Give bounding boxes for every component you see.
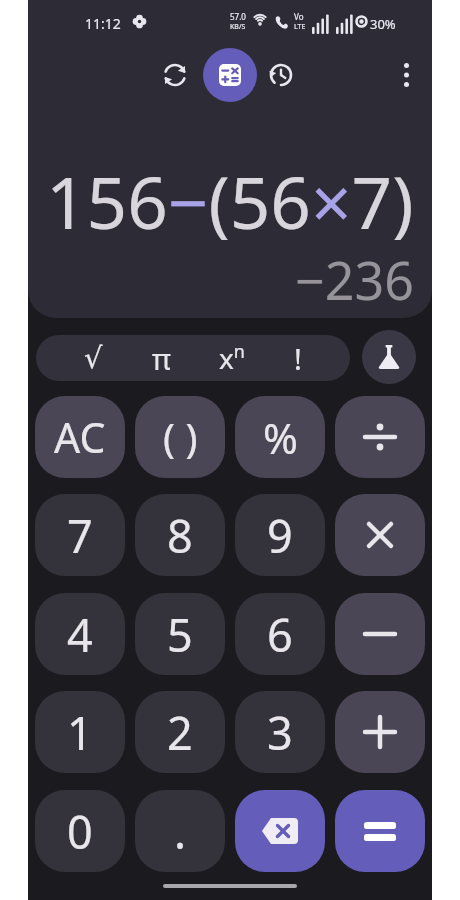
button[interactable]: ( )	[135, 396, 225, 478]
staticText: KB/S	[230, 22, 246, 32]
staticText: 7	[67, 505, 93, 566]
staticText: 0	[67, 801, 93, 862]
staticText: 9	[267, 505, 293, 566]
staticText: Vo	[294, 11, 304, 22]
button[interactable]: 6	[235, 593, 325, 675]
staticText: AC	[54, 409, 106, 465]
staticText: 2	[167, 702, 193, 763]
button[interactable]: AC	[35, 396, 125, 478]
button[interactable]	[335, 691, 425, 773]
button[interactable]	[203, 48, 257, 102]
button[interactable]	[335, 593, 425, 675]
staticText: 5	[167, 604, 193, 665]
staticText: 156−(56×7)	[46, 153, 414, 250]
staticText: −236	[295, 244, 414, 315]
staticText: 8	[167, 505, 193, 566]
button[interactable]: xn	[219, 339, 245, 377]
button[interactable]: π	[152, 339, 171, 378]
staticText: 6	[267, 604, 293, 665]
button[interactable]: 5	[135, 593, 225, 675]
button[interactable]: .	[135, 790, 225, 872]
staticText: LTE	[294, 22, 306, 32]
button[interactable]	[235, 790, 325, 872]
staticText: 1	[67, 702, 93, 763]
button[interactable]: 7	[35, 494, 125, 576]
button[interactable]	[362, 330, 416, 384]
button[interactable]: !	[294, 339, 302, 378]
button[interactable]: 3	[235, 691, 325, 773]
button[interactable]: 0	[35, 790, 125, 872]
staticText: 3	[267, 702, 293, 763]
button[interactable]	[265, 59, 297, 91]
button[interactable]: 1	[35, 691, 125, 773]
button[interactable]: 4	[35, 593, 125, 675]
staticText: 30%	[370, 15, 396, 33]
staticText: 57.0	[230, 11, 246, 22]
button[interactable]: 2	[135, 691, 225, 773]
button[interactable]	[335, 494, 425, 576]
staticText: 11:12	[85, 14, 121, 33]
button[interactable]: 9	[235, 494, 325, 576]
button[interactable]	[159, 59, 191, 91]
staticText: 4	[67, 604, 93, 665]
button[interactable]: √	[84, 341, 103, 375]
button[interactable]	[335, 790, 425, 872]
staticText: ( )	[163, 410, 198, 464]
button[interactable]: 8	[135, 494, 225, 576]
staticText: %	[263, 409, 298, 466]
button[interactable]	[335, 396, 425, 478]
button[interactable]	[392, 59, 420, 91]
button[interactable]: %	[235, 396, 325, 478]
staticText: .	[174, 801, 187, 862]
